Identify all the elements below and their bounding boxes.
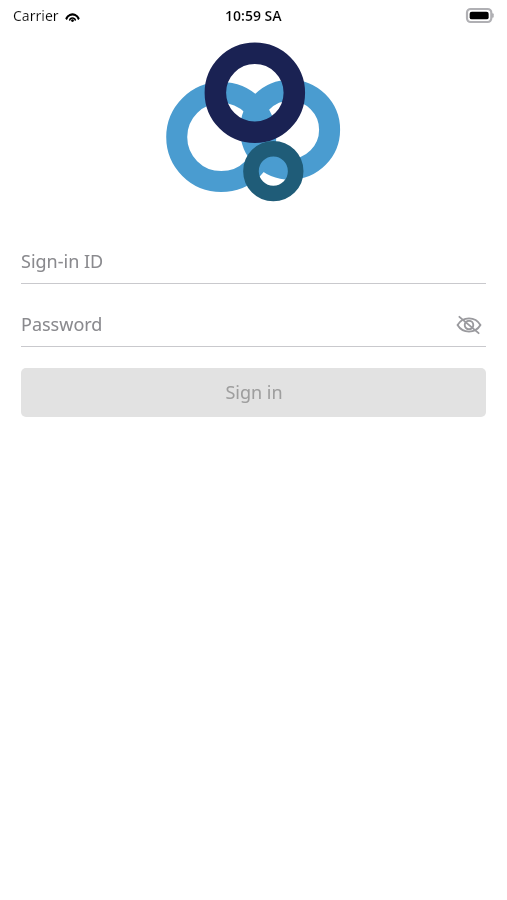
button[interactable]: Sign-in ID [21,240,486,284]
staticText: Sign in [225,380,283,405]
button[interactable]: Show password [452,308,486,342]
staticText: 10:59 SA [225,6,282,25]
button[interactable]: Sign in [21,368,486,417]
staticText: Sign-in ID [21,249,104,274]
staticText: Password [21,312,103,337]
button[interactable]: Password [21,303,486,347]
staticText: Carrier [13,6,59,25]
